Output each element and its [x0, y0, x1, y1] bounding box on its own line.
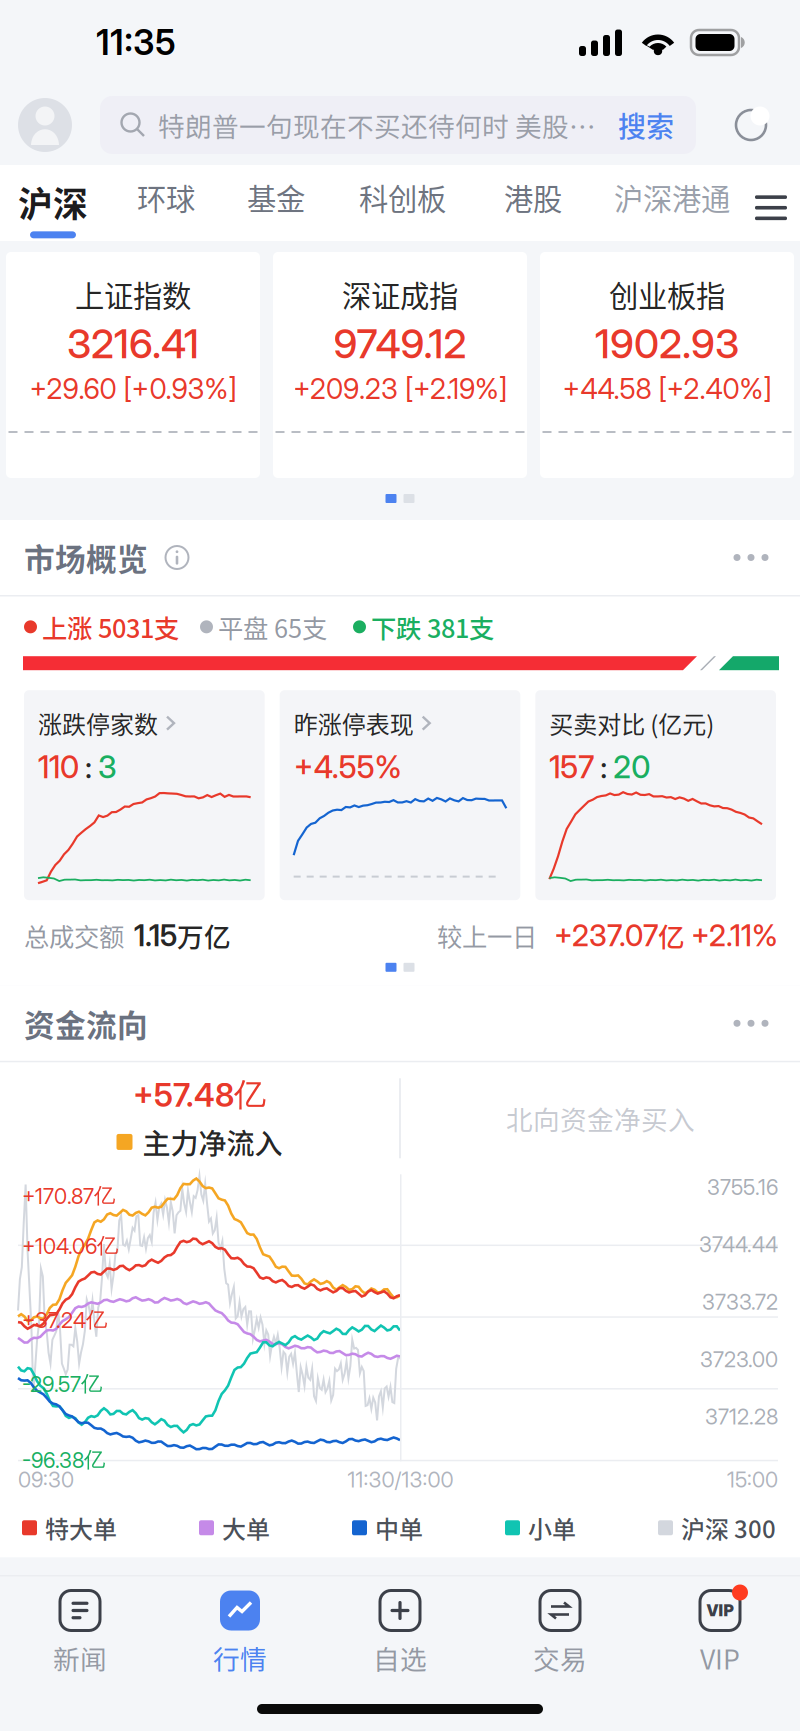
- staticText: 157: [549, 748, 594, 786]
- staticText: :: [600, 748, 607, 786]
- staticText: 交易: [533, 1638, 587, 1677]
- staticText: 3: [98, 748, 117, 786]
- staticText: 万亿: [177, 916, 231, 955]
- staticText: 涨跌停家数: [38, 706, 158, 741]
- staticText: VIP: [700, 1638, 740, 1677]
- staticText: 9749.12: [333, 319, 466, 368]
- button[interactable]: 新闻: [0, 1590, 160, 1677]
- button[interactable]: 买卖对比 (亿元): [535, 690, 776, 900]
- staticText: 上证指数: [75, 273, 191, 315]
- button[interactable]: 创业板指: [540, 252, 794, 478]
- staticText: 昨涨停表现: [294, 706, 414, 741]
- staticText: +44.58 [+2.40%]: [562, 372, 771, 406]
- button[interactable]: 港股: [499, 176, 567, 239]
- staticText: 15:00: [727, 1467, 778, 1493]
- staticText: 港股: [504, 176, 562, 218]
- button[interactable]: 科创板: [354, 176, 451, 239]
- staticText: :: [85, 748, 92, 786]
- staticText: 1902.93: [595, 319, 739, 368]
- staticText: 特大单: [45, 1510, 117, 1545]
- staticText: -29.57亿: [22, 1370, 102, 1397]
- button[interactable]: 上证指数: [6, 252, 260, 478]
- staticText: 深证成指: [342, 273, 458, 315]
- staticText: -96.38亿: [22, 1446, 105, 1473]
- button[interactable]: VIP: [640, 1590, 800, 1677]
- staticText: 买卖对比 (亿元): [549, 706, 714, 741]
- staticText: +170.87亿: [22, 1182, 115, 1209]
- staticText: 特朗普一句现在不买还待何时 美股三…: [158, 106, 614, 144]
- staticText: 沪深: [18, 177, 88, 227]
- button[interactable]: 自选: [320, 1590, 480, 1677]
- staticText: 上涨 5031支: [42, 608, 179, 645]
- staticText: 11:30/13:00: [347, 1467, 453, 1493]
- staticText: 自选: [373, 1638, 427, 1677]
- staticText: 市场概览: [24, 535, 148, 580]
- staticText: 资金流向: [24, 1001, 148, 1045]
- button[interactable]: 行情: [160, 1590, 320, 1677]
- button[interactable]: 更多: [716, 1001, 786, 1045]
- button[interactable]: 交易: [480, 1590, 640, 1677]
- staticText: 环球: [137, 176, 195, 218]
- staticText: 小单: [528, 1510, 576, 1545]
- staticText: 110: [38, 748, 79, 786]
- staticText: 11:35: [96, 21, 176, 63]
- staticText: 新闻: [53, 1638, 107, 1677]
- staticText: 基金: [247, 176, 305, 218]
- staticText: +209.23 [+2.19%]: [293, 372, 507, 406]
- button[interactable]: 全部板块: [743, 185, 799, 231]
- button[interactable]: 深证成指: [273, 252, 527, 478]
- button[interactable]: 环球: [132, 176, 200, 239]
- staticText: 大单: [222, 1510, 270, 1545]
- staticText: 主力净流入: [142, 1122, 282, 1162]
- staticText: VIP: [706, 1601, 733, 1620]
- staticText: +104.06亿: [22, 1232, 118, 1259]
- staticText: 总成交额: [24, 917, 124, 954]
- staticText: 沪深港通: [614, 176, 730, 218]
- staticText: +4.55%: [294, 748, 402, 786]
- button[interactable]: 更多: [716, 535, 786, 579]
- staticText: 较上一日: [437, 917, 537, 954]
- staticText: +57.48亿: [133, 1074, 266, 1115]
- staticText: 下跌 381支: [371, 608, 494, 645]
- staticText: 科创板: [359, 176, 446, 218]
- staticText: 沪深 300: [681, 1510, 776, 1545]
- button[interactable]: 沪深: [7, 177, 99, 238]
- staticText: 3723.00: [700, 1346, 778, 1372]
- staticText: 3755.16: [707, 1174, 778, 1200]
- button[interactable]: 夜间模式: [724, 98, 778, 152]
- staticText: 北向资金净买入: [506, 1099, 695, 1138]
- staticText: 3712.28: [705, 1404, 778, 1430]
- staticText: 创业板指: [609, 273, 725, 315]
- staticText: 20: [613, 748, 650, 786]
- button[interactable]: 昨涨停表现: [280, 690, 520, 900]
- staticText: 搜索: [618, 105, 674, 145]
- staticText: 行情: [213, 1638, 267, 1677]
- staticText: +29.60 [+0.93%]: [29, 372, 236, 406]
- staticText: 亿: [658, 916, 685, 955]
- button[interactable]: 沪深港通: [609, 176, 735, 239]
- button[interactable]: 基金: [242, 176, 310, 239]
- staticText: +237.07: [554, 918, 658, 953]
- staticText: 3216.41: [67, 319, 199, 368]
- staticText: 1.15: [134, 918, 177, 953]
- button[interactable]: 涨跌停家数: [24, 690, 265, 900]
- button[interactable]: 特朗普一句现在不买还待何时 美股三…: [100, 96, 696, 154]
- staticText: +37.24亿: [22, 1306, 107, 1333]
- staticText: 平盘 65支: [218, 608, 327, 645]
- staticText: 中单: [375, 1510, 423, 1545]
- staticText: +2.11%: [691, 918, 778, 953]
- staticText: 3733.72: [702, 1289, 778, 1315]
- staticText: 3744.44: [699, 1232, 778, 1257]
- staticText: 09:30: [18, 1467, 74, 1493]
- button[interactable]: 个人中心: [18, 98, 72, 152]
